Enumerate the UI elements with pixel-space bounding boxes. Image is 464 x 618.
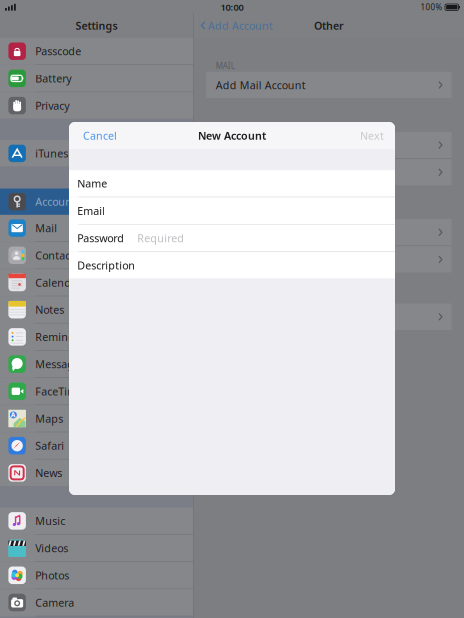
staticText: Camera bbox=[35, 595, 74, 610]
staticText: Contacts bbox=[35, 248, 79, 262]
button[interactable]: iTunes bbox=[0, 140, 193, 167]
staticText: Mail bbox=[35, 221, 57, 235]
button[interactable]: Add CalDAV Account bbox=[206, 219, 451, 245]
staticText: Photos bbox=[35, 568, 69, 582]
staticText: A bbox=[11, 410, 16, 419]
staticText: Messages bbox=[35, 357, 85, 371]
staticText: Required bbox=[137, 231, 184, 245]
staticText: Maps bbox=[35, 411, 63, 426]
button[interactable]: Contacts bbox=[0, 242, 193, 268]
staticText: Add Account bbox=[208, 18, 273, 33]
button[interactable]: Music bbox=[0, 508, 193, 534]
staticText: Add CardDAV Account bbox=[216, 165, 328, 179]
button[interactable]: Notes bbox=[0, 296, 193, 323]
staticText: 100% bbox=[420, 2, 442, 12]
staticText: 10:00 bbox=[220, 1, 243, 13]
staticText: Cancel bbox=[83, 128, 117, 143]
staticText: Music bbox=[35, 514, 65, 528]
button[interactable]: Add CardDAV Account bbox=[206, 159, 451, 185]
staticText: CONTACTS bbox=[216, 120, 255, 131]
button[interactable]: FaceTime bbox=[0, 378, 193, 404]
button[interactable]: A bbox=[0, 405, 193, 432]
staticText: Name bbox=[77, 176, 107, 191]
button[interactable]: Add LDAP Account bbox=[206, 132, 451, 158]
button[interactable]: Calendar bbox=[0, 269, 193, 296]
button[interactable]: Safari bbox=[0, 432, 193, 459]
staticText: News bbox=[35, 466, 62, 480]
staticText: Settings bbox=[75, 18, 117, 33]
staticText: Reminders bbox=[35, 330, 90, 344]
button[interactable]: Add Mail Account bbox=[206, 72, 451, 98]
staticText: Description bbox=[77, 258, 135, 272]
button[interactable]: Cancel bbox=[69, 122, 117, 149]
button[interactable]: Reminders bbox=[0, 324, 193, 350]
staticText: MAIL bbox=[216, 60, 235, 71]
staticText: Battery bbox=[35, 71, 71, 85]
staticText: Password bbox=[77, 231, 124, 245]
button[interactable]: Videos bbox=[0, 535, 193, 561]
button[interactable]: Add Account bbox=[194, 14, 273, 37]
button[interactable]: Battery bbox=[0, 65, 193, 92]
staticText: Videos bbox=[35, 541, 68, 555]
staticText: iTunes bbox=[35, 146, 68, 160]
staticText: Notes bbox=[35, 303, 64, 317]
button[interactable]: Passcode bbox=[0, 38, 193, 64]
staticText: Add LDAP Account bbox=[216, 138, 311, 152]
staticText: Safari bbox=[35, 439, 64, 453]
staticText: Privacy bbox=[35, 98, 69, 113]
button[interactable]: Photos bbox=[0, 562, 193, 588]
staticText: Next bbox=[360, 128, 384, 143]
staticText: Passcode bbox=[35, 44, 81, 58]
button[interactable]: Privacy bbox=[0, 92, 193, 119]
staticText: Calendar bbox=[35, 275, 81, 290]
button[interactable]: Add macOS Server Account bbox=[206, 304, 451, 330]
button[interactable]: Mail bbox=[0, 215, 193, 241]
button[interactable]: Messages bbox=[0, 351, 193, 377]
button[interactable]: Next bbox=[360, 122, 395, 149]
staticText: FaceTime bbox=[35, 384, 83, 398]
button[interactable]: Add Subscribed Calendar bbox=[206, 246, 451, 273]
button[interactable]: Accounts bbox=[0, 188, 193, 215]
staticText: Email bbox=[77, 204, 105, 218]
staticText: New Account bbox=[198, 128, 266, 143]
button[interactable]: Camera bbox=[0, 589, 193, 616]
staticText: Accounts bbox=[35, 195, 81, 209]
staticText: Add Mail Account bbox=[216, 78, 306, 92]
staticText: Other bbox=[314, 18, 344, 33]
button[interactable]: News bbox=[0, 460, 193, 486]
